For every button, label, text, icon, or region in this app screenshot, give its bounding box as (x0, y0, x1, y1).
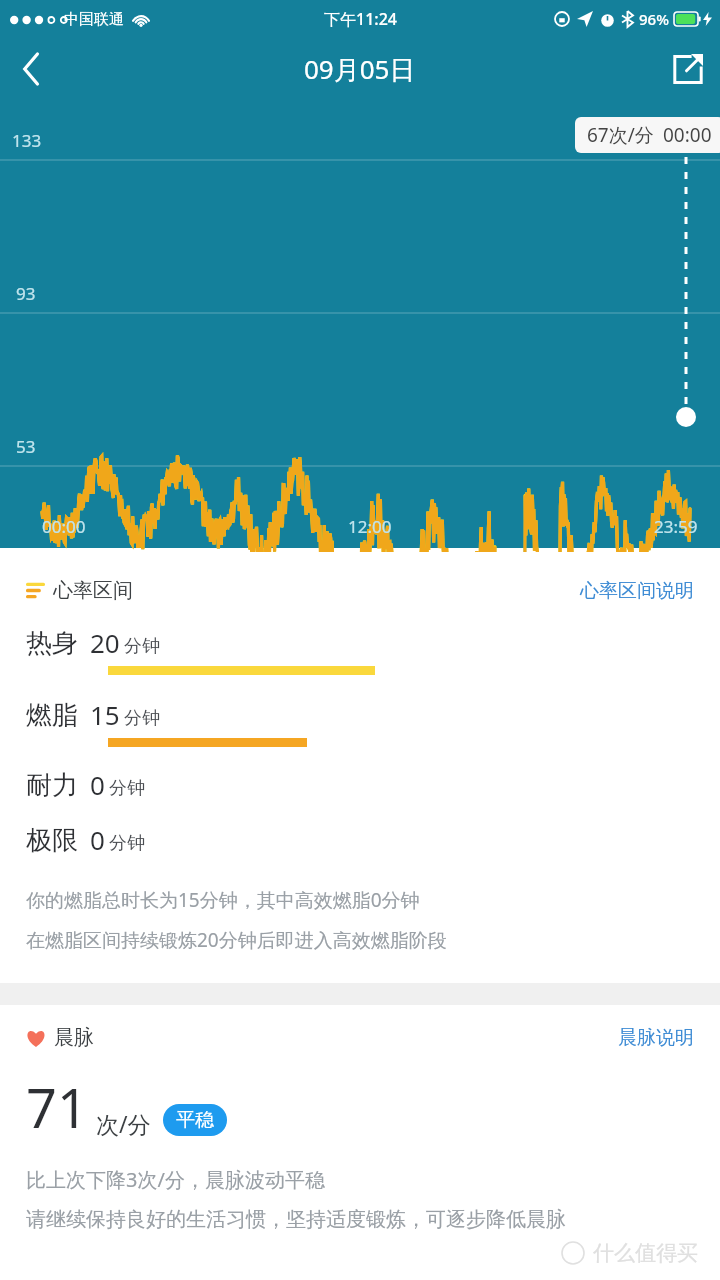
staticText: 23:59 (654, 515, 698, 538)
staticText: 心率区间说明 (580, 579, 694, 603)
staticText: 比上次下降3次/分，晨脉波动平稳 (26, 1166, 325, 1193)
staticText: 请继续保持良好的生活习惯，坚持适度锻炼，可逐步降低晨脉 (26, 1207, 566, 1232)
staticText: 平稳 (176, 1108, 214, 1132)
staticText: 心率区间 (53, 578, 133, 603)
staticText: 晨脉 (54, 1025, 94, 1050)
staticText: 下午11:24 (324, 8, 397, 30)
staticText: 次/分 (96, 1108, 151, 1139)
staticText: 耐力 (26, 769, 78, 802)
staticText: 你的燃脂总时长为15分钟，其中高效燃脂0分钟 (26, 887, 420, 913)
staticText: 什么值得买 (593, 1240, 698, 1266)
staticText: 中国联通 (64, 10, 124, 29)
staticText: 0 (90, 767, 105, 802)
staticText: 晨脉说明 (618, 1026, 694, 1050)
staticText: 09月05日 (304, 51, 416, 87)
button[interactable]: 晨脉说明 (618, 1026, 694, 1050)
staticText: 分钟 (124, 635, 160, 658)
staticText: 96% (639, 9, 669, 29)
staticText: 20 (90, 625, 120, 660)
staticText: 分钟 (109, 832, 145, 855)
button[interactable]: 平稳 (176, 1108, 214, 1132)
staticText: 133 (12, 129, 42, 152)
staticText: 热身 (26, 627, 78, 660)
staticText: 0 (90, 822, 105, 857)
staticText: 93 (16, 282, 36, 305)
staticText: 极限 (26, 824, 78, 857)
staticText: 分钟 (124, 707, 160, 730)
staticText: 分钟 (109, 777, 145, 800)
staticText: 53 (16, 435, 36, 458)
button[interactable]: 心率区间说明 (580, 579, 694, 603)
staticText: 12:00 (348, 515, 392, 538)
staticText: 燃脂 (26, 699, 78, 732)
button[interactable]: Back (0, 38, 62, 99)
staticText: 71 (26, 1070, 88, 1144)
staticText: 在燃脂区间持续锻炼20分钟后即进入高效燃脂阶段 (26, 927, 447, 953)
staticText: 15 (90, 697, 120, 732)
staticText: 00:00 (42, 515, 86, 538)
button[interactable]: Share (656, 38, 720, 99)
staticText: 00:00 (663, 122, 712, 148)
staticText: 67次/分 (587, 122, 654, 148)
